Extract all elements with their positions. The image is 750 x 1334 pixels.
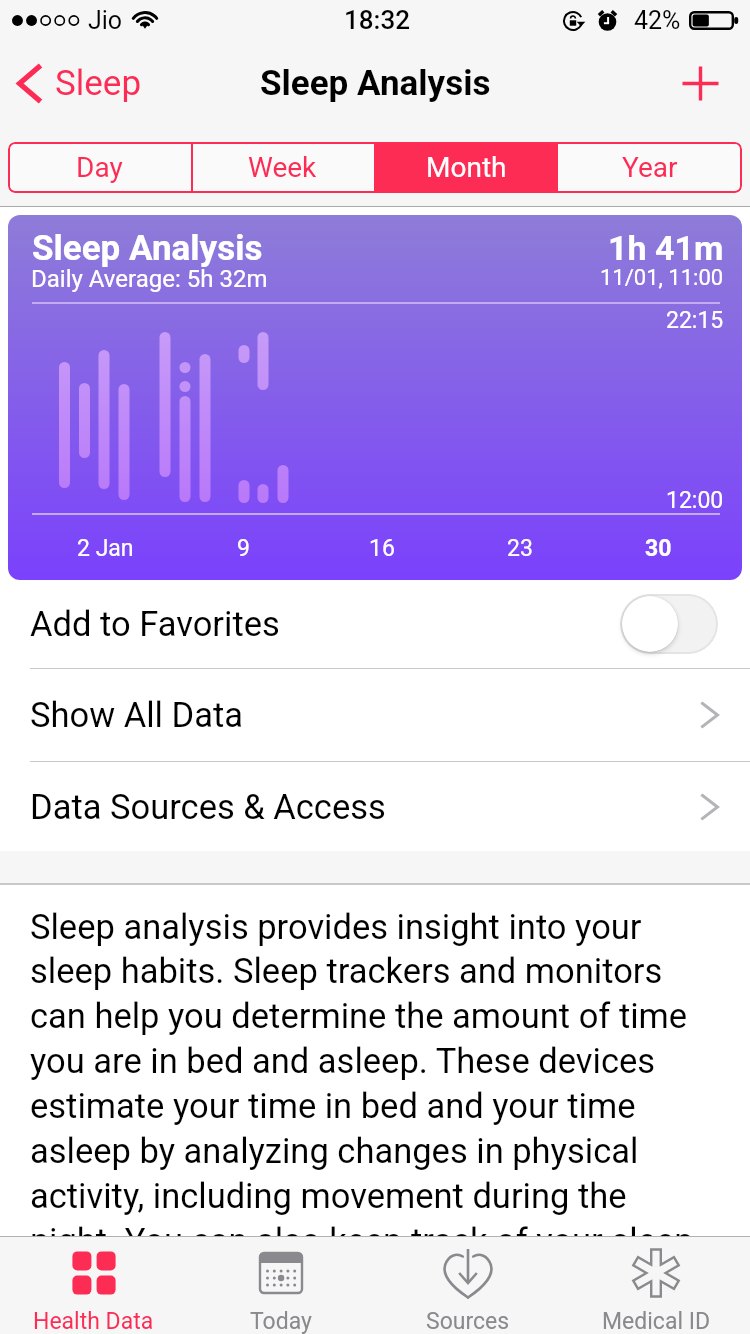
- button[interactable]: Sources: [374, 1237, 562, 1334]
- staticText: Medical ID: [602, 1308, 711, 1334]
- staticText: 1h 41m: [608, 228, 724, 268]
- staticText: Month: [426, 151, 507, 184]
- staticText: Sleep Analysis: [260, 63, 491, 104]
- staticText: Jio: [88, 6, 123, 35]
- button[interactable]: Add data: [650, 40, 750, 127]
- button[interactable]: Day: [8, 142, 191, 193]
- staticText: 23: [507, 535, 533, 562]
- button[interactable]: Month: [374, 142, 558, 193]
- button[interactable]: Sleep: [0, 40, 142, 127]
- staticText: 12:00: [666, 487, 724, 514]
- staticText: Show All Data: [30, 695, 701, 735]
- staticText: Today: [250, 1308, 312, 1334]
- button[interactable]: Health Data: [0, 1237, 187, 1334]
- staticText: Daily Average: 5h 32m: [31, 265, 268, 293]
- staticText: 11/01, 11:00: [600, 265, 724, 291]
- staticText: Sources: [426, 1308, 510, 1334]
- button[interactable]: Medical ID: [562, 1237, 750, 1334]
- staticText: 42%: [634, 6, 681, 35]
- button[interactable]: Today: [187, 1237, 374, 1334]
- staticText: Week: [248, 151, 317, 184]
- staticText: Add to Favorites: [30, 604, 280, 644]
- staticText: Sleep Analysis: [32, 228, 263, 269]
- button[interactable]: Add to Favorites: [0, 580, 750, 668]
- staticText: Day: [76, 151, 123, 184]
- button[interactable]: Week: [191, 142, 374, 193]
- staticText: Year: [622, 151, 678, 184]
- staticText: 2 Jan: [77, 535, 134, 562]
- staticText: 30: [645, 535, 672, 562]
- button[interactable]: Year: [558, 142, 742, 193]
- staticText: Sleep: [55, 63, 142, 104]
- staticText: 9: [237, 535, 250, 562]
- button[interactable]: Show All Data: [0, 669, 750, 761]
- staticText: Health Data: [33, 1308, 154, 1334]
- button[interactable]: Data Sources & Access: [0, 762, 750, 851]
- button[interactable]: Add to Favorites: [620, 594, 718, 654]
- staticText: Data Sources & Access: [30, 787, 701, 827]
- staticText: 16: [369, 535, 395, 562]
- staticText: Sleep analysis provides insight into you…: [30, 907, 702, 1262]
- staticText: 22:15: [666, 307, 724, 334]
- staticText: 18:32: [344, 5, 410, 35]
